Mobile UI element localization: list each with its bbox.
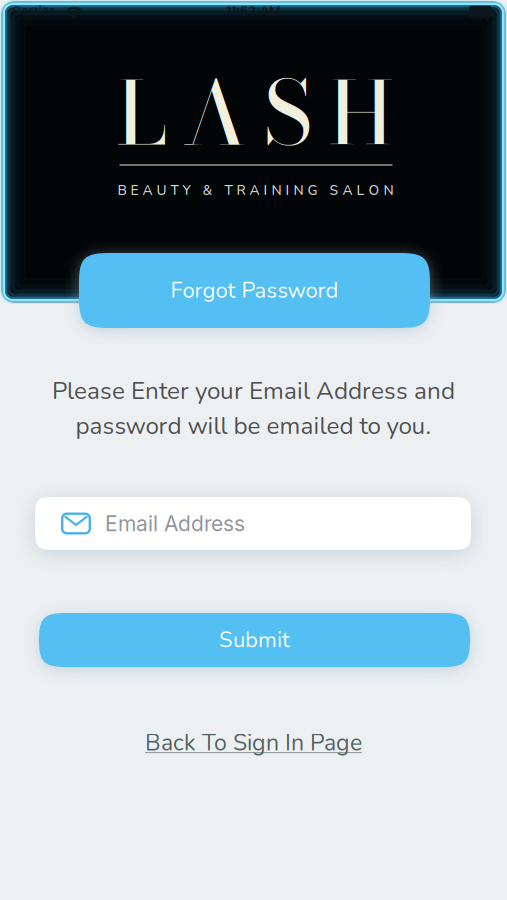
staticText: Submit	[219, 625, 290, 655]
staticText: Forgot Password	[170, 275, 338, 305]
button[interactable]: Back To Sign In Page	[145, 727, 362, 759]
button[interactable]: Forgot Password	[79, 253, 430, 328]
staticText: L	[116, 48, 166, 179]
staticText: Carrier	[11, 4, 54, 19]
staticText: B E A U T Y & T R A I N I N G S A L O N	[117, 181, 393, 200]
button[interactable]: Submit	[39, 613, 470, 667]
button[interactable]: Email Address	[35, 497, 471, 550]
staticText: S	[263, 48, 312, 179]
staticText: H	[328, 48, 393, 179]
staticText: Please Enter your Email Address and	[52, 374, 455, 408]
staticText: Email Address	[105, 511, 245, 536]
staticText: A	[182, 48, 247, 179]
staticText: password will be emailed to you.	[75, 409, 431, 443]
staticText: 11:53 AM	[226, 4, 281, 19]
staticText: Back To Sign In Page	[145, 727, 362, 759]
